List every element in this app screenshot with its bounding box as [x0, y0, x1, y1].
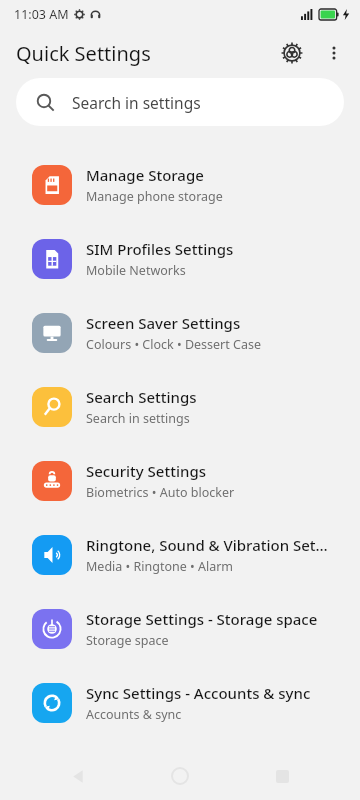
- staticText: Screen Saver Settings: [86, 313, 241, 333]
- staticText: Quick Settings: [16, 40, 151, 67]
- button[interactable]: Recents: [258, 752, 306, 800]
- staticText: Search in settings: [86, 410, 190, 427]
- button[interactable]: Sync Settings - Accounts & sync: [0, 666, 360, 740]
- staticText: Storage Settings - Storage space: [86, 609, 318, 629]
- staticText: Storage space: [86, 632, 169, 649]
- staticText: Manage phone storage: [86, 188, 223, 205]
- staticText: Ringtone, Sound & Vibration Settings: [86, 535, 328, 555]
- staticText: Search in settings: [72, 92, 201, 113]
- button[interactable]: Search Settings: [0, 370, 360, 444]
- button[interactable]: Security Settings: [0, 444, 360, 518]
- staticText: SIM Profiles Settings: [86, 239, 234, 259]
- button[interactable]: Search in settings: [16, 78, 344, 126]
- staticText: Manage Storage: [86, 165, 204, 185]
- button[interactable]: Storage Settings - Storage space: [0, 592, 360, 666]
- staticText: Accounts & sync: [86, 706, 182, 723]
- button[interactable]: Ringtone, Sound & Vibration Settings: [0, 518, 360, 592]
- button[interactable]: Screen Saver Settings: [0, 296, 360, 370]
- button[interactable]: Settings: [270, 31, 314, 75]
- staticText: Sync Settings - Accounts & sync: [86, 683, 311, 703]
- staticText: Search Settings: [86, 387, 197, 407]
- button[interactable]: SIM Profiles Settings: [0, 222, 360, 296]
- button[interactable]: More options: [314, 33, 354, 73]
- staticText: Media • Ringtone • Alarm: [86, 558, 234, 575]
- staticText: 11:03 AM: [14, 6, 69, 23]
- staticText: Biometrics • Auto blocker: [86, 484, 235, 501]
- staticText: Security Settings: [86, 461, 206, 481]
- staticText: Colours • Clock • Dessert Case: [86, 336, 261, 353]
- staticText: Mobile Networks: [86, 262, 186, 279]
- button[interactable]: Manage Storage: [0, 148, 360, 222]
